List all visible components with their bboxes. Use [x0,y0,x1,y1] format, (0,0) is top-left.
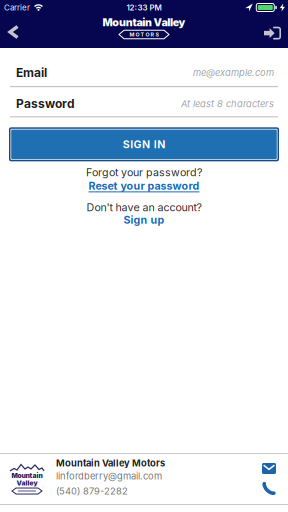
staticText: Carrier [4,3,30,12]
staticText: (540) 879-2282 [56,485,128,496]
staticText: Mountain [11,472,42,479]
button[interactable]: Email field [0,48,288,86]
button[interactable]: SIGN IN [0,127,288,161]
button[interactable]: Password field [0,87,288,116]
staticText: linfordberry@gmail.com [56,470,162,481]
staticText: Don't have an account? [86,201,201,214]
staticText: Sign up [123,213,164,226]
staticText: me@example.com [193,67,274,78]
staticText: Valley [16,479,37,487]
staticText: At least 8 characters [181,98,274,109]
button[interactable]: Call dealer [262,482,275,495]
staticText: M O T O R S [129,31,158,38]
staticText: Mountain Valley [102,16,186,29]
staticText: 12:33 PM [126,3,161,12]
staticText: Password [16,97,75,111]
button[interactable]: Back [0,18,29,48]
staticText: SIGN IN [123,138,165,151]
staticText: Email [16,65,47,80]
button[interactable]: Sign up [123,213,164,226]
staticText: Mountain Valley Motors [56,457,165,468]
button[interactable]: Sign in [254,18,288,48]
button[interactable]: Email dealer [262,463,276,474]
staticText: Reset your password [88,179,199,192]
staticText: Forgot your password? [86,166,202,179]
button[interactable]: Reset your password [88,178,199,192]
